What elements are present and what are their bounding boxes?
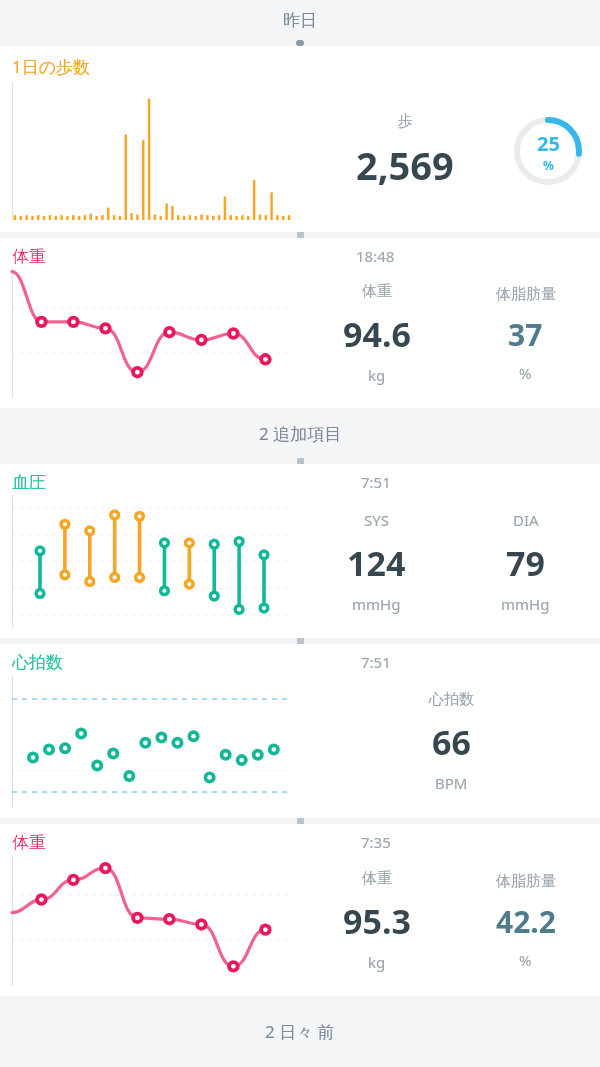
staticText: kg: [368, 365, 386, 385]
staticText: BPM: [435, 773, 468, 793]
staticText: 42.2: [496, 901, 556, 942]
staticText: 7:35: [361, 832, 391, 852]
staticText: 血圧: [12, 472, 46, 493]
staticText: 2 日々 前: [265, 1020, 335, 1043]
staticText: 1日の歩数: [12, 55, 91, 78]
staticText: mmHg: [352, 594, 401, 614]
staticText: 25: [537, 130, 560, 157]
staticText: %: [519, 950, 532, 970]
staticText: 体脂肪量: [496, 872, 556, 891]
staticText: 18:48: [356, 246, 395, 266]
button[interactable]: 1日の歩数: [0, 46, 600, 232]
staticText: %: [543, 157, 554, 173]
staticText: 2 追加項目: [259, 422, 342, 445]
staticText: 体重: [12, 246, 46, 267]
button[interactable]: 体重: [0, 238, 600, 408]
button[interactable]: 血圧: [0, 464, 600, 638]
button[interactable]: 2 日々 前: [0, 996, 600, 1067]
staticText: 7:51: [361, 652, 391, 672]
button[interactable]: 心拍数: [0, 644, 600, 818]
staticText: 体重: [12, 832, 46, 853]
staticText: 体重: [362, 282, 392, 301]
staticText: 歩: [398, 112, 413, 131]
button[interactable]: 2 追加項目: [0, 408, 600, 458]
staticText: mmHg: [501, 594, 550, 614]
staticText: 7:51: [361, 472, 391, 492]
staticText: 2,569: [356, 139, 454, 191]
staticText: 心拍数: [12, 652, 63, 673]
staticText: kg: [368, 952, 386, 972]
button[interactable]: 体重: [0, 824, 600, 996]
staticText: 79: [506, 540, 545, 586]
staticText: DIA: [513, 510, 539, 530]
button[interactable]: 昨日: [0, 0, 600, 40]
staticText: SYS: [364, 510, 389, 530]
staticText: 95.3: [343, 898, 411, 944]
staticText: 昨日: [283, 10, 317, 31]
staticText: 124: [347, 540, 406, 586]
staticText: 94.6: [343, 311, 411, 357]
staticText: 37: [508, 314, 543, 355]
staticText: 体脂肪量: [496, 285, 556, 304]
staticText: 心拍数: [429, 690, 474, 709]
staticText: %: [519, 363, 532, 383]
staticText: 体重: [362, 869, 392, 888]
staticText: 66: [432, 719, 471, 765]
